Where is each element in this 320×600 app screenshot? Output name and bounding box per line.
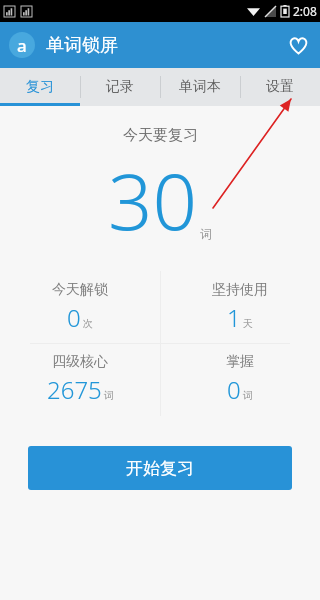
staticText: 坚持使用: [212, 281, 268, 299]
staticText: 0: [67, 301, 81, 334]
staticText: 词: [104, 389, 114, 402]
staticText: 今天要复习: [123, 126, 198, 145]
staticText: 2675: [47, 373, 102, 406]
staticText: 次: [83, 317, 93, 330]
staticText: 2:08: [293, 3, 317, 19]
staticText: 四级核心: [52, 353, 108, 371]
button[interactable]: 单词本: [160, 68, 240, 106]
button[interactable]: 设置: [240, 68, 320, 106]
staticText: 词: [200, 226, 212, 241]
staticText: 1: [227, 301, 241, 334]
staticText: 今天解锁: [52, 281, 108, 299]
button[interactable]: 复习: [0, 68, 80, 106]
button[interactable]: 掌握: [160, 343, 320, 416]
button[interactable]: 坚持使用: [160, 271, 320, 343]
staticText: 单词锁屏: [46, 34, 118, 57]
button[interactable]: 开始复习: [28, 446, 292, 490]
staticText: 掌握: [226, 353, 254, 371]
staticText: 0: [227, 373, 241, 406]
button[interactable]: 记录: [80, 68, 160, 106]
staticText: 复习: [26, 78, 54, 96]
staticText: 单词本: [179, 78, 221, 96]
staticText: 记录: [106, 78, 134, 96]
button[interactable]: 四级核心: [0, 343, 160, 416]
button[interactable]: 今天解锁: [0, 271, 160, 343]
staticText: 设置: [266, 78, 294, 96]
staticText: 天: [243, 317, 253, 330]
staticText: 30: [108, 147, 198, 253]
staticText: 词: [243, 389, 253, 402]
staticText: 开始复习: [126, 458, 194, 479]
button[interactable]: App icon: [9, 32, 35, 58]
staticText: a: [17, 34, 27, 57]
button[interactable]: Favorite: [276, 23, 320, 67]
